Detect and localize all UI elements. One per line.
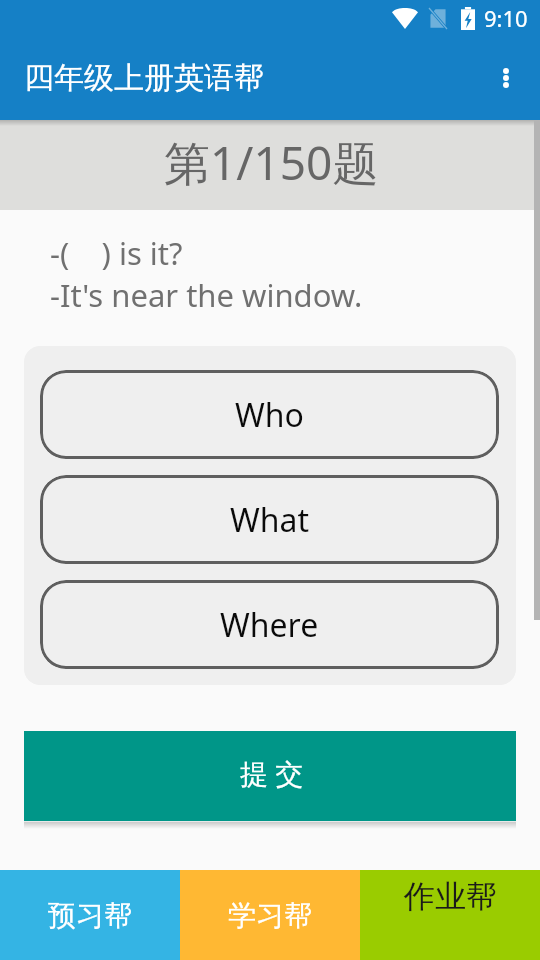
button[interactable]: More options [480, 52, 532, 104]
staticText: Where [220, 603, 319, 647]
staticText: -( ) is it? -It's near the window. [50, 232, 363, 316]
staticText: 作业帮 [404, 877, 497, 916]
staticText: 第1/150题 [164, 131, 379, 194]
button[interactable]: 作业帮 [360, 870, 540, 960]
staticText: Who [235, 393, 304, 437]
staticText: 四年级上册英语帮 [24, 59, 264, 97]
button[interactable]: 预习帮 [0, 870, 180, 960]
button[interactable]: Where [40, 580, 499, 669]
button[interactable]: Who [40, 370, 499, 459]
button[interactable]: 学习帮 [180, 870, 360, 960]
staticText: What [230, 498, 310, 542]
staticText: 提 交 [240, 754, 304, 792]
staticText: 9:10 [484, 3, 528, 33]
staticText: 学习帮 [228, 898, 312, 933]
button[interactable]: What [40, 475, 499, 564]
staticText: 预习帮 [48, 898, 132, 933]
button[interactable]: 提 交 [24, 731, 516, 821]
